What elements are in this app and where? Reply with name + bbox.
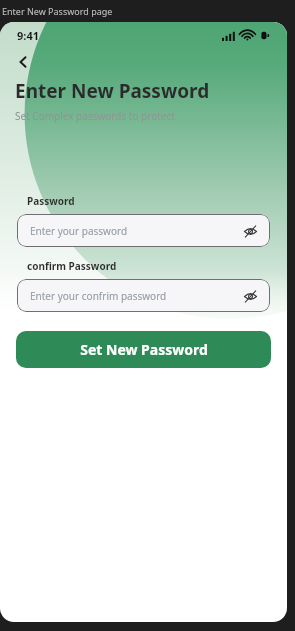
- button[interactable]: Show password: [241, 222, 259, 240]
- staticText: Set New Password: [80, 340, 208, 359]
- staticText: Password: [27, 194, 75, 208]
- staticText: confirm Password: [27, 259, 117, 273]
- staticText: Enter your confrim password: [30, 289, 167, 303]
- staticText: Enter New Password page: [2, 5, 113, 17]
- button[interactable]: Enter your password: [17, 214, 270, 247]
- button[interactable]: Enter your confrim password: [17, 279, 270, 312]
- button[interactable]: Show confirm password: [241, 287, 259, 305]
- staticText: Set Complex passwords to protect: [15, 109, 175, 123]
- button[interactable]: Set New Password: [16, 331, 271, 368]
- button[interactable]: Back: [10, 49, 36, 75]
- staticText: Enter your password: [30, 224, 128, 238]
- staticText: 9:41: [17, 28, 39, 43]
- staticText: Enter New Password: [15, 78, 210, 104]
